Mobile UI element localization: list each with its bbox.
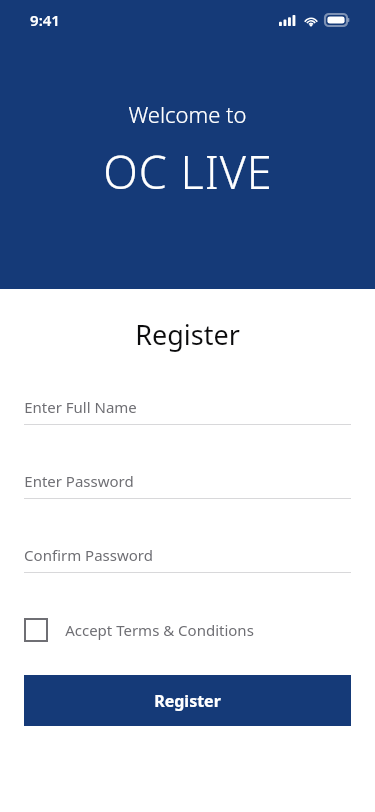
staticText: Confirm Password xyxy=(24,545,153,565)
staticText: OC LIVE xyxy=(103,141,273,202)
button[interactable]: Register xyxy=(24,675,351,726)
staticText: Enter Full Name xyxy=(24,397,137,417)
button[interactable]: Confirm Password xyxy=(24,545,351,573)
staticText: Enter Password xyxy=(24,471,134,491)
staticText: Accept Terms & Conditions xyxy=(65,620,254,640)
button[interactable]: Enter Full Name xyxy=(24,397,351,425)
staticText: 9:41 xyxy=(30,10,60,30)
button[interactable]: Accept Terms & Conditions xyxy=(24,618,351,642)
staticText: Register xyxy=(154,690,221,712)
button[interactable]: Enter Password xyxy=(24,471,351,499)
staticText: Register xyxy=(135,316,240,353)
staticText: Welcome to xyxy=(128,99,247,129)
